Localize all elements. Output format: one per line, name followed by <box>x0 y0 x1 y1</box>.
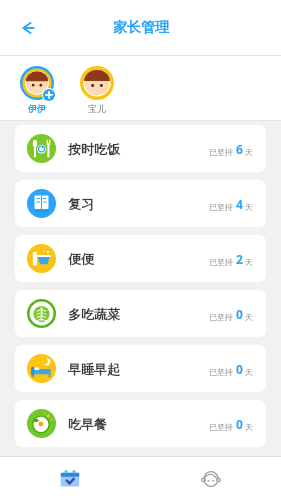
staticText: 天 <box>243 256 254 267</box>
staticText: 天 <box>243 311 254 322</box>
staticText: 已坚持 <box>209 311 236 322</box>
staticText: 复习 <box>68 196 94 212</box>
staticText: 2 <box>236 251 243 267</box>
button[interactable]: 复习 <box>15 180 266 227</box>
staticText: 家长管理 <box>113 19 169 37</box>
staticText: 宝儿 <box>88 103 106 114</box>
staticText: 0 <box>236 306 243 322</box>
staticText: 吃早餐 <box>68 416 107 432</box>
staticText: 多吃蔬菜 <box>68 306 120 322</box>
staticText: 已坚持 <box>209 201 236 212</box>
staticText: 6 <box>236 141 243 157</box>
staticText: 已坚持 <box>209 256 236 267</box>
staticText: 便便 <box>68 251 94 267</box>
staticText: 已坚持 <box>209 366 236 377</box>
staticText: 天 <box>243 421 254 432</box>
button[interactable]: 早睡早起 <box>15 345 266 392</box>
staticText: 天 <box>243 146 254 157</box>
staticText: 已坚持 <box>209 421 236 432</box>
button[interactable]: 宝儿 <box>74 64 120 114</box>
staticText: 天 <box>243 366 254 377</box>
button[interactable]: 按时吃饭 <box>15 125 266 172</box>
button[interactable]: 多吃蔬菜 <box>15 290 266 337</box>
button[interactable]: Back <box>8 8 48 48</box>
staticText: 天 <box>243 201 254 212</box>
staticText: 0 <box>236 361 243 377</box>
button[interactable]: 便便 <box>15 235 266 282</box>
staticText: 4 <box>236 196 243 212</box>
staticText: 按时吃饭 <box>68 141 120 157</box>
staticText: 伊伊 <box>28 103 46 114</box>
button[interactable]: 伊伊 <box>14 64 60 114</box>
staticText: 早睡早起 <box>68 361 120 377</box>
staticText: 已坚持 <box>209 146 236 157</box>
staticText: 0 <box>236 416 243 432</box>
button[interactable]: 吃早餐 <box>15 400 266 447</box>
button[interactable]: Profile <box>140 457 281 500</box>
button[interactable]: Calendar <box>0 457 140 500</box>
